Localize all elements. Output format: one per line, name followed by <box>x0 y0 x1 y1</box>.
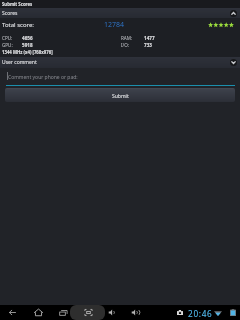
button[interactable]: Screenshot <box>81 305 95 320</box>
staticText: User comment <box>2 59 37 66</box>
staticText: 5918 <box>22 42 33 48</box>
button[interactable]: Recent apps <box>56 305 70 320</box>
other: Battery <box>230 309 236 316</box>
staticText: 733 <box>144 42 152 48</box>
staticText: Submit <box>112 93 129 100</box>
button[interactable]: Submit <box>5 88 235 102</box>
staticText: Comment your phone or pad: <box>8 74 78 81</box>
other: Collapse <box>230 10 237 17</box>
staticText: 20:46 <box>188 308 213 319</box>
staticText: Scores <box>2 10 18 17</box>
staticText: 12784 <box>104 20 125 30</box>
button[interactable]: Volume down <box>105 305 119 320</box>
button[interactable]: Scores <box>0 8 240 18</box>
staticText: 1477 <box>144 35 155 41</box>
button[interactable]: Back <box>5 305 19 320</box>
button[interactable]: Home <box>31 305 45 320</box>
staticText: Submit Scores <box>2 1 33 7</box>
other: Camera <box>177 310 183 315</box>
staticText: 1344 MHz (x4) [768x976] <box>2 49 53 55</box>
staticText: 4656 <box>22 35 33 41</box>
staticText: I/O: <box>121 42 130 48</box>
staticText: CPU: <box>2 35 13 41</box>
button[interactable]: User comment <box>0 57 240 68</box>
other: Expand <box>230 59 237 66</box>
staticText: RAM: <box>121 35 133 41</box>
button[interactable]: Volume up <box>128 305 142 320</box>
staticText: Total score: <box>2 21 34 29</box>
other: Wi-Fi <box>214 310 222 316</box>
staticText: GPU: <box>2 42 13 48</box>
